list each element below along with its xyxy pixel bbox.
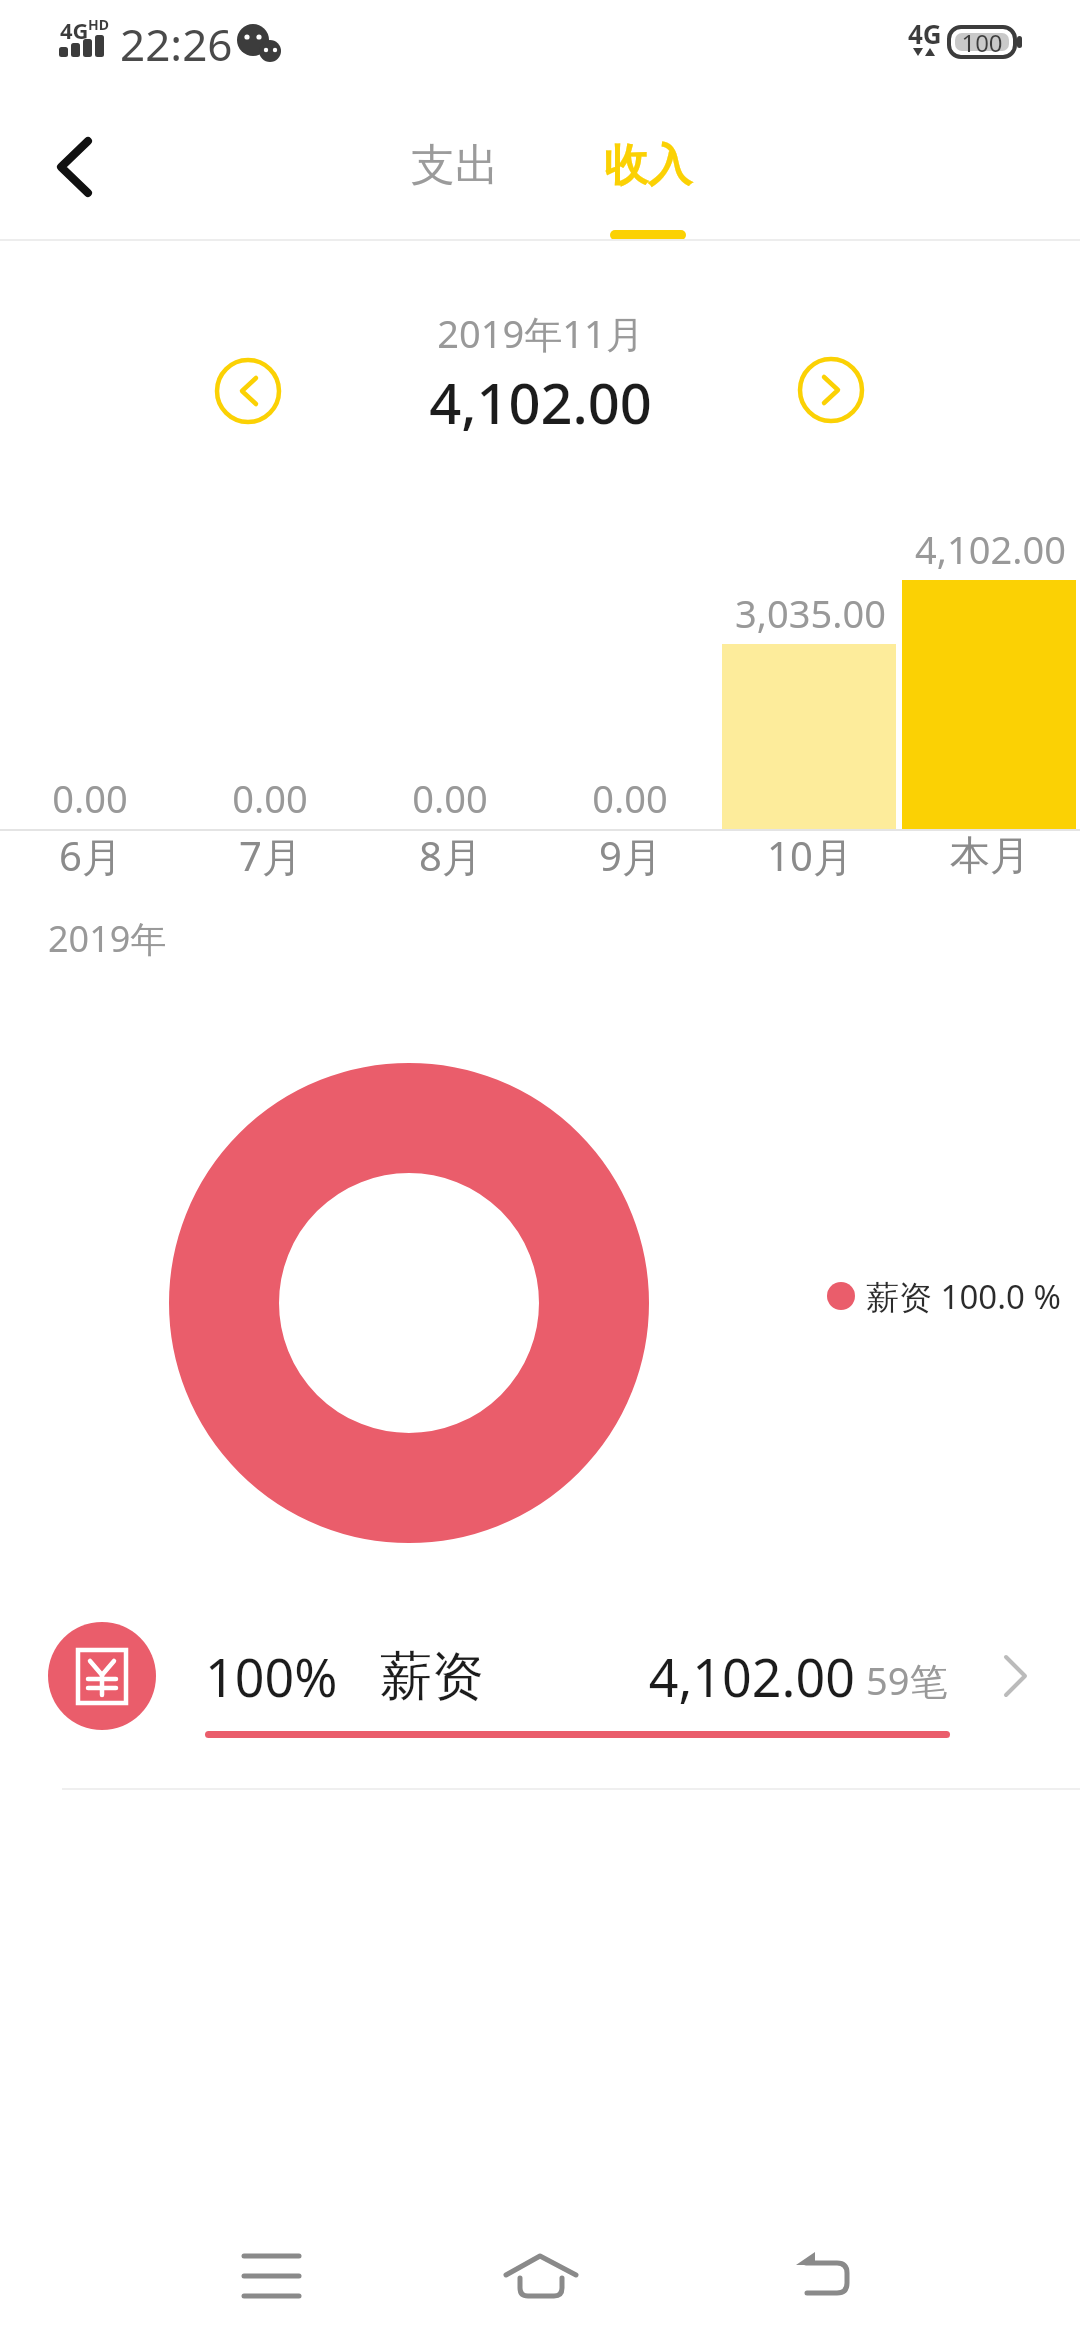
button[interactable] [795, 354, 867, 426]
staticText: 100% [205, 1641, 338, 1712]
staticText: 4G [908, 16, 942, 51]
button[interactable] [480, 2216, 600, 2336]
staticText: 59笔 [866, 1654, 948, 1706]
button[interactable] [40, 130, 110, 200]
staticText: 4,102.00 [915, 523, 1066, 575]
button[interactable] [766, 2216, 886, 2336]
button[interactable] [0, 1615, 1080, 1740]
staticText: 本月 [950, 830, 1030, 880]
staticText: 7月 [239, 828, 302, 883]
staticText: 0.00 [412, 772, 488, 824]
staticText: 2019年 [48, 914, 167, 963]
staticText: 8月 [419, 828, 482, 883]
staticText: 0.00 [592, 772, 668, 824]
staticText: HD [88, 15, 109, 34]
button[interactable] [211, 2216, 331, 2336]
staticText: 22:26 [120, 14, 233, 74]
button[interactable]: 支出 [405, 135, 505, 195]
button[interactable]: 收入 [598, 135, 698, 195]
button[interactable] [212, 355, 284, 427]
staticText: 100 [961, 26, 1003, 59]
staticText: 10月 [767, 828, 853, 883]
staticText: 0.00 [52, 772, 128, 824]
staticText: 4G [60, 15, 89, 45]
staticText: 4,102.00 [429, 364, 652, 440]
staticText: 收入 [604, 138, 692, 193]
staticText: 6月 [59, 828, 122, 883]
staticText: 薪资 [380, 1644, 484, 1710]
staticText: 薪资 100.0 % [866, 1274, 1061, 1319]
staticText: 4,102.00 [648, 1641, 855, 1712]
staticText: 2019年11月 [437, 307, 644, 359]
staticText: 支出 [411, 138, 499, 193]
staticText: 0.00 [232, 772, 308, 824]
staticText: 3,035.00 [735, 587, 886, 639]
staticText: 9月 [599, 828, 662, 883]
